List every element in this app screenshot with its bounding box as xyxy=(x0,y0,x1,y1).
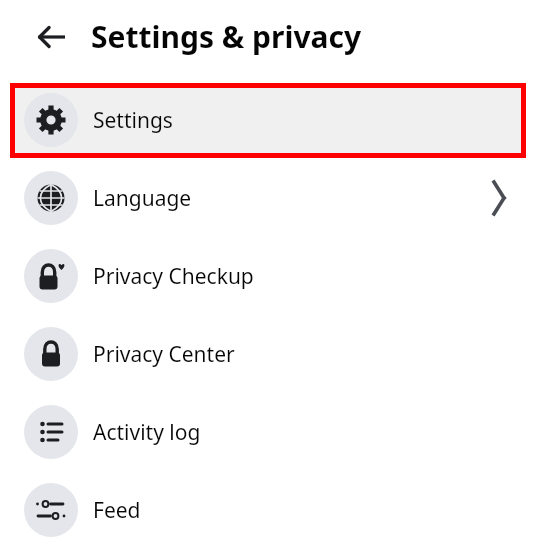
staticText: Settings & privacy xyxy=(91,16,362,57)
staticText: Privacy Checkup xyxy=(93,262,254,291)
button[interactable]: Language xyxy=(0,159,538,237)
staticText: Feed xyxy=(93,496,141,525)
staticText: Privacy Center xyxy=(93,340,235,369)
button[interactable]: Privacy Checkup xyxy=(0,237,538,315)
button[interactable]: Privacy Center xyxy=(0,315,538,393)
button[interactable]: Settings xyxy=(0,81,538,159)
button[interactable] xyxy=(13,86,522,155)
staticText: Activity log xyxy=(93,418,201,447)
staticText: Settings xyxy=(93,106,173,135)
staticText: Language xyxy=(93,184,192,213)
button[interactable]: Activity log xyxy=(0,393,538,471)
button[interactable]: Open Language xyxy=(475,174,523,222)
button[interactable]: Back xyxy=(28,13,76,61)
button[interactable]: Feed xyxy=(0,471,538,549)
